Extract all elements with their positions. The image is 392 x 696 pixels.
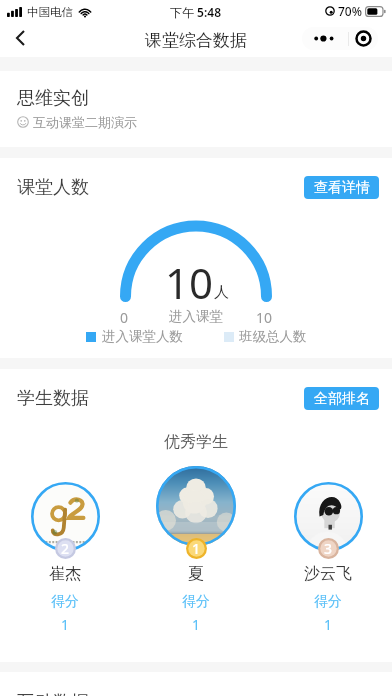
button[interactable]: 关闭	[349, 27, 378, 50]
button[interactable]: 返回	[6, 24, 34, 52]
staticText: 70%	[338, 3, 362, 19]
staticText: 查看详情	[314, 179, 370, 197]
button[interactable]: 查看详情	[304, 176, 379, 199]
staticText: 1	[15, 615, 115, 634]
staticText: 崔杰	[15, 564, 115, 584]
staticText: 1	[146, 615, 246, 634]
staticText: 得分	[278, 593, 378, 611]
staticText: 0	[120, 308, 129, 327]
staticText: 班级总人数	[239, 328, 307, 345]
staticText: 10	[256, 308, 273, 327]
staticText: 得分	[15, 593, 115, 611]
staticText: 下午 5:48	[170, 4, 222, 20]
staticText: 中国电信	[27, 5, 73, 19]
staticText: 课堂综合数据	[145, 30, 247, 51]
staticText: 进入课堂	[169, 308, 223, 325]
staticText: 互动课堂二期演示	[33, 114, 137, 130]
button[interactable]: 全部排名	[304, 387, 379, 410]
staticText: 2	[61, 539, 70, 558]
staticText: 10	[165, 254, 214, 311]
staticText: 学生数据	[17, 387, 89, 410]
staticText: 夏	[146, 564, 246, 584]
staticText: 进入课堂人数	[102, 328, 183, 345]
button[interactable]: 沙云飞	[294, 482, 363, 551]
button[interactable]: 更多	[302, 27, 348, 50]
staticText: 1	[192, 539, 201, 558]
staticText: 思维实创	[17, 87, 89, 110]
staticText: 3	[324, 539, 333, 558]
button[interactable]: 崔杰	[31, 482, 100, 551]
staticText: 课堂人数	[17, 176, 89, 199]
staticText: 人	[214, 283, 229, 302]
staticText: 互动数据	[17, 691, 89, 696]
staticText: 得分	[146, 593, 246, 611]
staticText: 沙云飞	[278, 564, 378, 584]
button[interactable]: 夏	[156, 466, 236, 546]
staticText: 优秀学生	[0, 432, 392, 452]
staticText: 1	[278, 615, 378, 634]
staticText: 全部排名	[314, 390, 370, 408]
